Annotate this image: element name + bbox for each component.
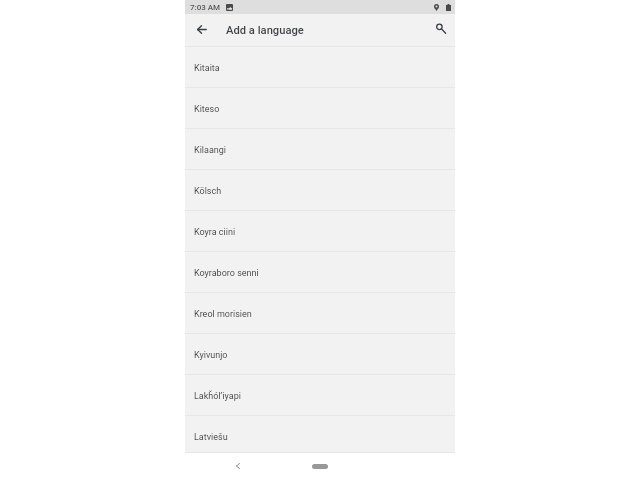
button[interactable]: Kreol morisien: [185, 292, 455, 333]
staticText: Kitaita: [194, 63, 220, 74]
staticText: Koyraboro senni: [194, 268, 259, 279]
staticText: Kyivunjo: [194, 350, 228, 361]
staticText: Kiteso: [194, 104, 220, 115]
button[interactable]: Lakȟól’iyapi: [185, 374, 455, 415]
staticText: Add a language: [226, 24, 304, 37]
button[interactable]: Koyraboro senni: [185, 251, 455, 292]
staticText: Kilaangi: [194, 145, 227, 156]
staticText: Lakȟól’iyapi: [194, 391, 241, 402]
button[interactable]: Home: [312, 464, 328, 469]
button[interactable]: Kilaangi: [185, 128, 455, 169]
staticText: 7:03 AM: [190, 3, 221, 12]
button[interactable]: Kölsch: [185, 169, 455, 210]
button[interactable]: Latviešu: [185, 415, 455, 456]
staticText: Kreol morisien: [194, 309, 252, 320]
button[interactable]: Koyra ciini: [185, 210, 455, 251]
button[interactable]: Search: [423, 14, 455, 46]
staticText: Kölsch: [194, 186, 222, 197]
button[interactable]: Navigate up: [185, 14, 217, 46]
button[interactable]: Kyivunjo: [185, 333, 455, 374]
staticText: Koyra ciini: [194, 227, 236, 238]
button[interactable]: Back: [227, 455, 249, 477]
button[interactable]: Kitaita: [185, 46, 455, 87]
staticText: Latviešu: [194, 432, 228, 443]
button[interactable]: Kiteso: [185, 87, 455, 128]
